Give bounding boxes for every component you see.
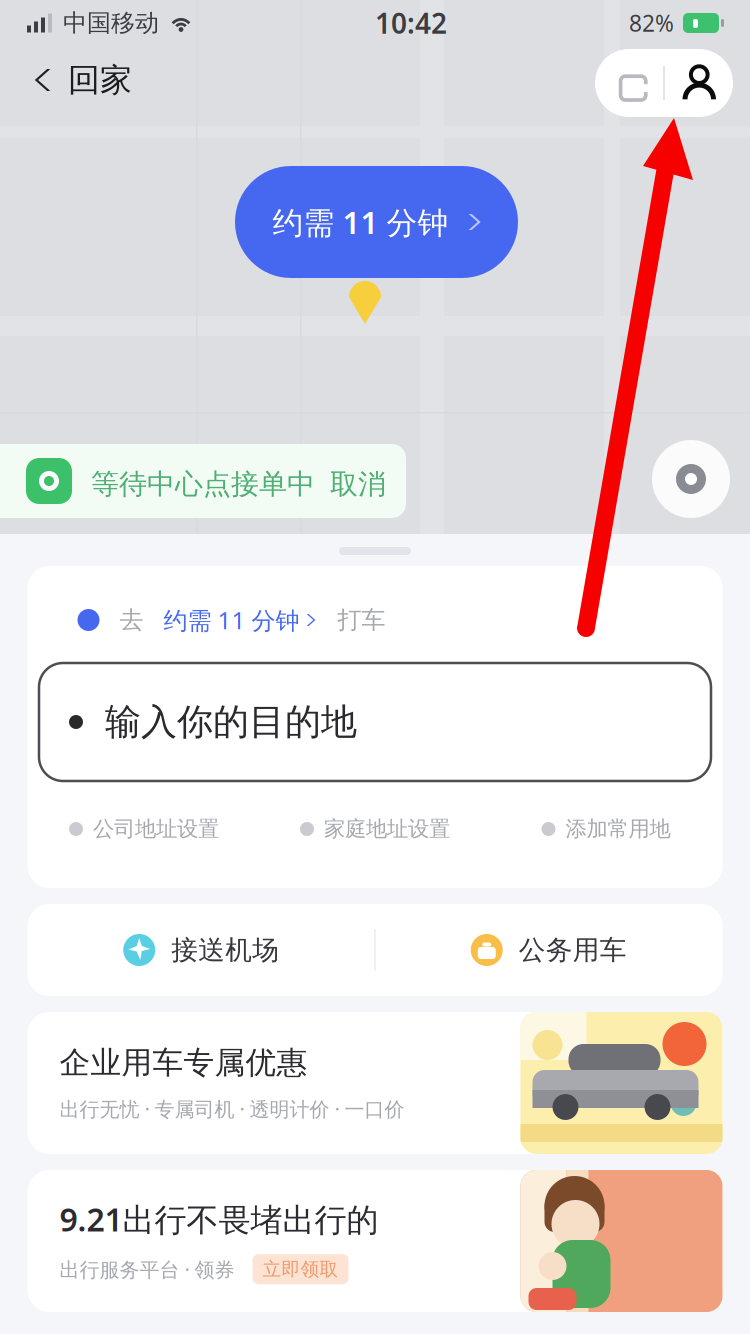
staticText: 去: [119, 605, 143, 635]
button[interactable]: 公司地址设置: [28, 781, 259, 877]
button[interactable]: 公务用车: [376, 904, 722, 996]
button[interactable]: 等待中心点接单中: [0, 444, 406, 518]
staticText: 立即领取: [262, 1258, 338, 1281]
button[interactable]: 添加常用地: [490, 781, 721, 877]
staticText: 输入你的目的地: [105, 700, 357, 744]
staticText: 9.21出行不畏堵出行的: [59, 1198, 378, 1240]
button[interactable]: 家庭地址设置: [259, 781, 490, 877]
staticText: 出行无忧 · 专属司机 · 透明计价 · 一口价: [59, 1096, 404, 1122]
staticText: 公务用车: [519, 934, 627, 966]
staticText: 家庭地址设置: [324, 816, 450, 842]
button[interactable]: 接送机场: [28, 904, 374, 996]
button[interactable]: Mini program menu: [594, 49, 663, 117]
button[interactable]: 约需 11 分钟: [235, 166, 518, 278]
staticText: 企业用车专属优惠: [59, 1044, 307, 1082]
staticText: 添加常用地: [565, 816, 670, 842]
staticText: 82%: [629, 8, 674, 38]
staticText: 约需 11 分钟: [272, 202, 448, 242]
button[interactable]: 9.21出行不畏堵出行的: [27, 1170, 722, 1312]
staticText: 接送机场: [171, 934, 279, 966]
staticText: 中国移动: [63, 8, 159, 38]
button[interactable]: Profile: [665, 49, 734, 117]
staticText: 10:42: [375, 4, 447, 42]
staticText: 取消: [330, 467, 386, 501]
staticText: 公司地址设置: [93, 816, 219, 842]
button[interactable]: 回家: [0, 48, 148, 112]
button[interactable]: 输入你的目的地: [39, 663, 711, 781]
staticText: 打车: [337, 605, 385, 635]
button[interactable]: Locate me: [652, 440, 730, 518]
staticText: 回家: [68, 60, 132, 100]
staticText: 等待中心点接单中: [91, 467, 315, 501]
button[interactable]: 企业用车专属优惠: [27, 1012, 722, 1154]
staticText: 出行服务平台 · 领券: [59, 1256, 234, 1283]
staticText: 约需 11 分钟: [163, 604, 299, 636]
